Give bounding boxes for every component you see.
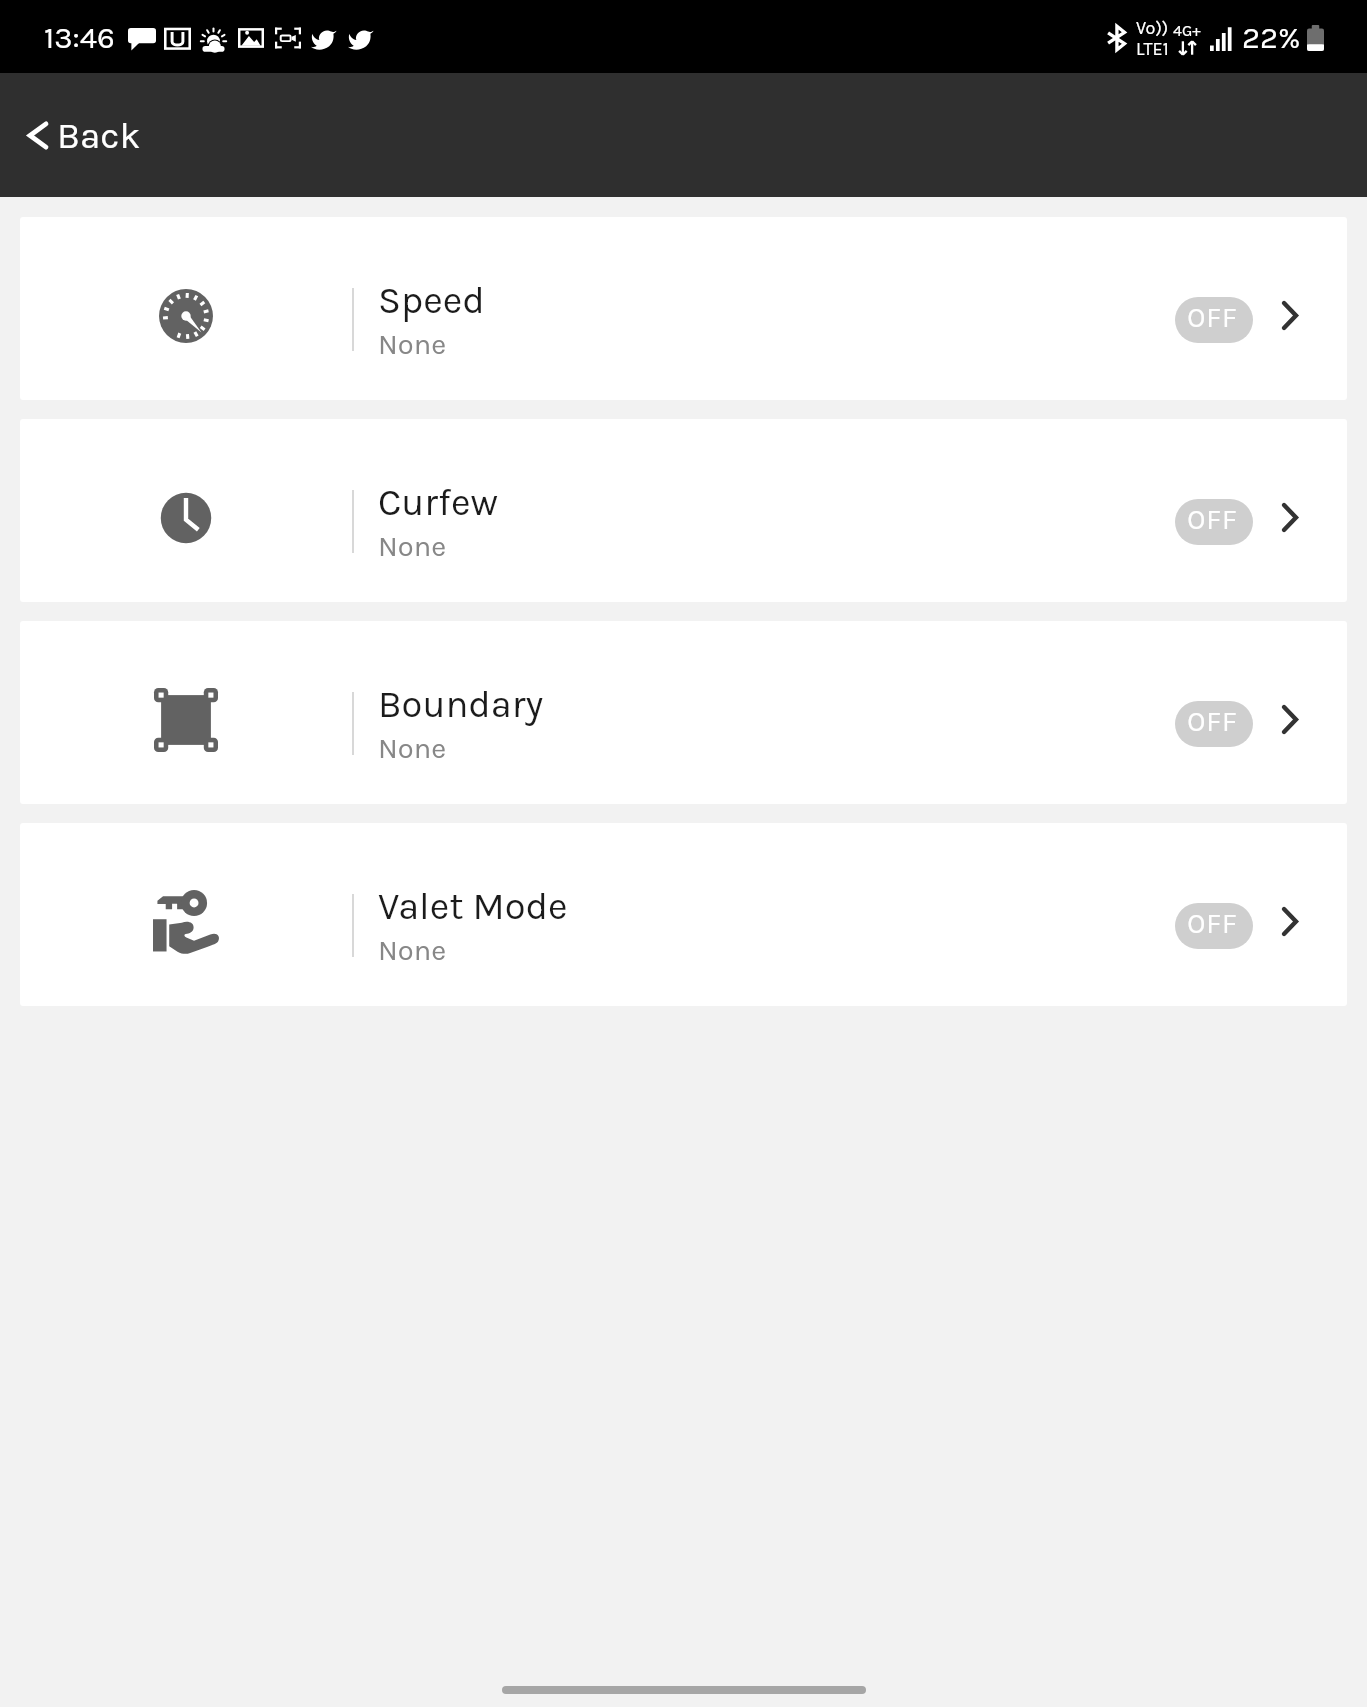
staticText: 13:46 xyxy=(44,20,115,56)
staticText: None xyxy=(378,529,447,563)
staticText: Curfew xyxy=(378,480,499,524)
staticText: Valet Mode xyxy=(378,884,568,928)
staticText: OFF xyxy=(1187,301,1238,334)
staticText: Speed xyxy=(378,278,485,322)
staticText: None xyxy=(378,731,447,765)
staticText: OFF xyxy=(1187,907,1238,940)
staticText: Boundary xyxy=(378,682,544,726)
button[interactable]: OFF xyxy=(1175,701,1253,747)
button[interactable]: Speed xyxy=(20,217,1347,400)
staticText: Back xyxy=(57,114,141,157)
staticText: 4G+ xyxy=(1173,21,1201,40)
button[interactable]: OFF xyxy=(1175,297,1253,343)
button[interactable]: Back xyxy=(0,73,1367,197)
staticText: None xyxy=(378,933,447,967)
staticText: Vo)) xyxy=(1136,17,1169,38)
button[interactable]: OFF xyxy=(1175,499,1253,545)
button[interactable]: Boundary xyxy=(20,621,1347,804)
button[interactable]: Valet Mode xyxy=(20,823,1347,1006)
staticText: None xyxy=(378,327,447,361)
staticText: 22% xyxy=(1242,20,1301,56)
button[interactable]: OFF xyxy=(1175,903,1253,949)
staticText: LTE1 xyxy=(1136,38,1169,59)
button[interactable]: Curfew xyxy=(20,419,1347,602)
staticText: OFF xyxy=(1187,503,1238,536)
staticText: OFF xyxy=(1187,705,1238,738)
